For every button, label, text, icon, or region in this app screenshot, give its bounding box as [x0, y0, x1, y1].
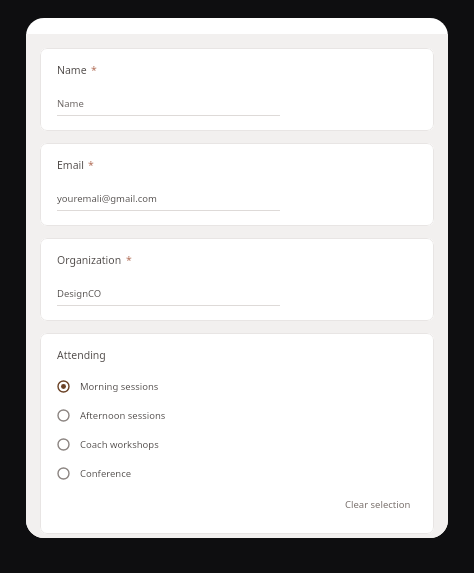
button[interactable]: DesignCO [57, 287, 280, 306]
staticText: * [88, 158, 94, 172]
staticText: Email [57, 158, 84, 172]
staticText: * [91, 63, 97, 77]
staticText: youremali@gmail.com [57, 192, 157, 205]
button[interactable]: Afternoon sessions [57, 407, 417, 424]
staticText: Morning sessions [80, 380, 159, 393]
staticText: * [126, 253, 132, 267]
staticText: DesignCO [57, 287, 102, 300]
staticText: Coach workshops [80, 438, 159, 451]
button[interactable]: youremali@gmail.com [57, 192, 280, 211]
button[interactable]: Name [57, 97, 280, 116]
staticText: Clear selection [345, 498, 411, 511]
staticText: Organization [57, 253, 122, 267]
button[interactable]: Conference [57, 465, 417, 482]
staticText: Name [57, 63, 87, 77]
staticText: Afternoon sessions [80, 409, 166, 422]
button[interactable]: Morning sessions [57, 378, 417, 395]
staticText: Attending [57, 348, 106, 362]
staticText: Name [57, 97, 84, 110]
staticText: Conference [80, 467, 132, 480]
button[interactable]: Clear selection [339, 494, 417, 515]
button[interactable]: Coach workshops [57, 436, 417, 453]
